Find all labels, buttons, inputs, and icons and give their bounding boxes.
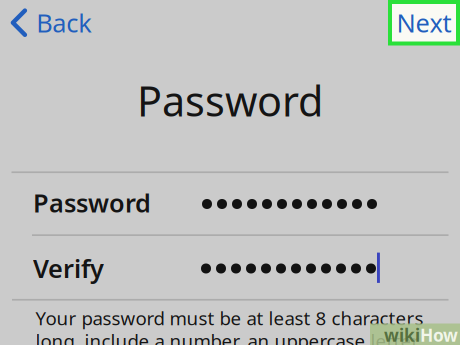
staticText: Next [396,6,451,39]
staticText: wiki [384,323,420,345]
staticText: Password [137,73,323,128]
button[interactable]: Verify [0,236,460,299]
staticText: Your password must be at least 8 charact… [35,306,423,345]
staticText: How [420,323,458,345]
staticText: Password [33,186,151,219]
staticText: Verify [33,251,104,285]
button[interactable]: Next [388,0,460,45]
button[interactable]: Password [0,173,460,234]
staticText: Back [36,6,92,39]
button[interactable]: Back [1,1,101,45]
